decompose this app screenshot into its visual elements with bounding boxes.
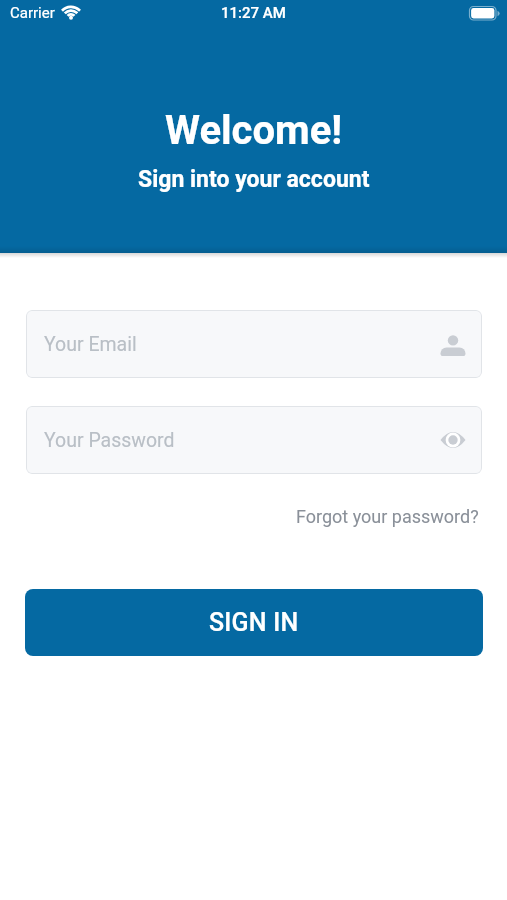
- staticText: Welcome!: [165, 107, 343, 154]
- staticText: 11:27 AM: [221, 4, 286, 22]
- staticText: SIGN IN: [209, 608, 299, 637]
- staticText: Your Password: [44, 429, 175, 452]
- button[interactable]: Your Password: [26, 406, 482, 474]
- staticText: Your Email: [44, 333, 137, 356]
- button[interactable]: Forgot your password?: [296, 506, 479, 527]
- staticText: Carrier: [10, 4, 55, 22]
- button[interactable]: SIGN IN: [25, 589, 483, 656]
- staticText: Sign into your account: [138, 166, 370, 193]
- button[interactable]: Your Email: [26, 310, 482, 378]
